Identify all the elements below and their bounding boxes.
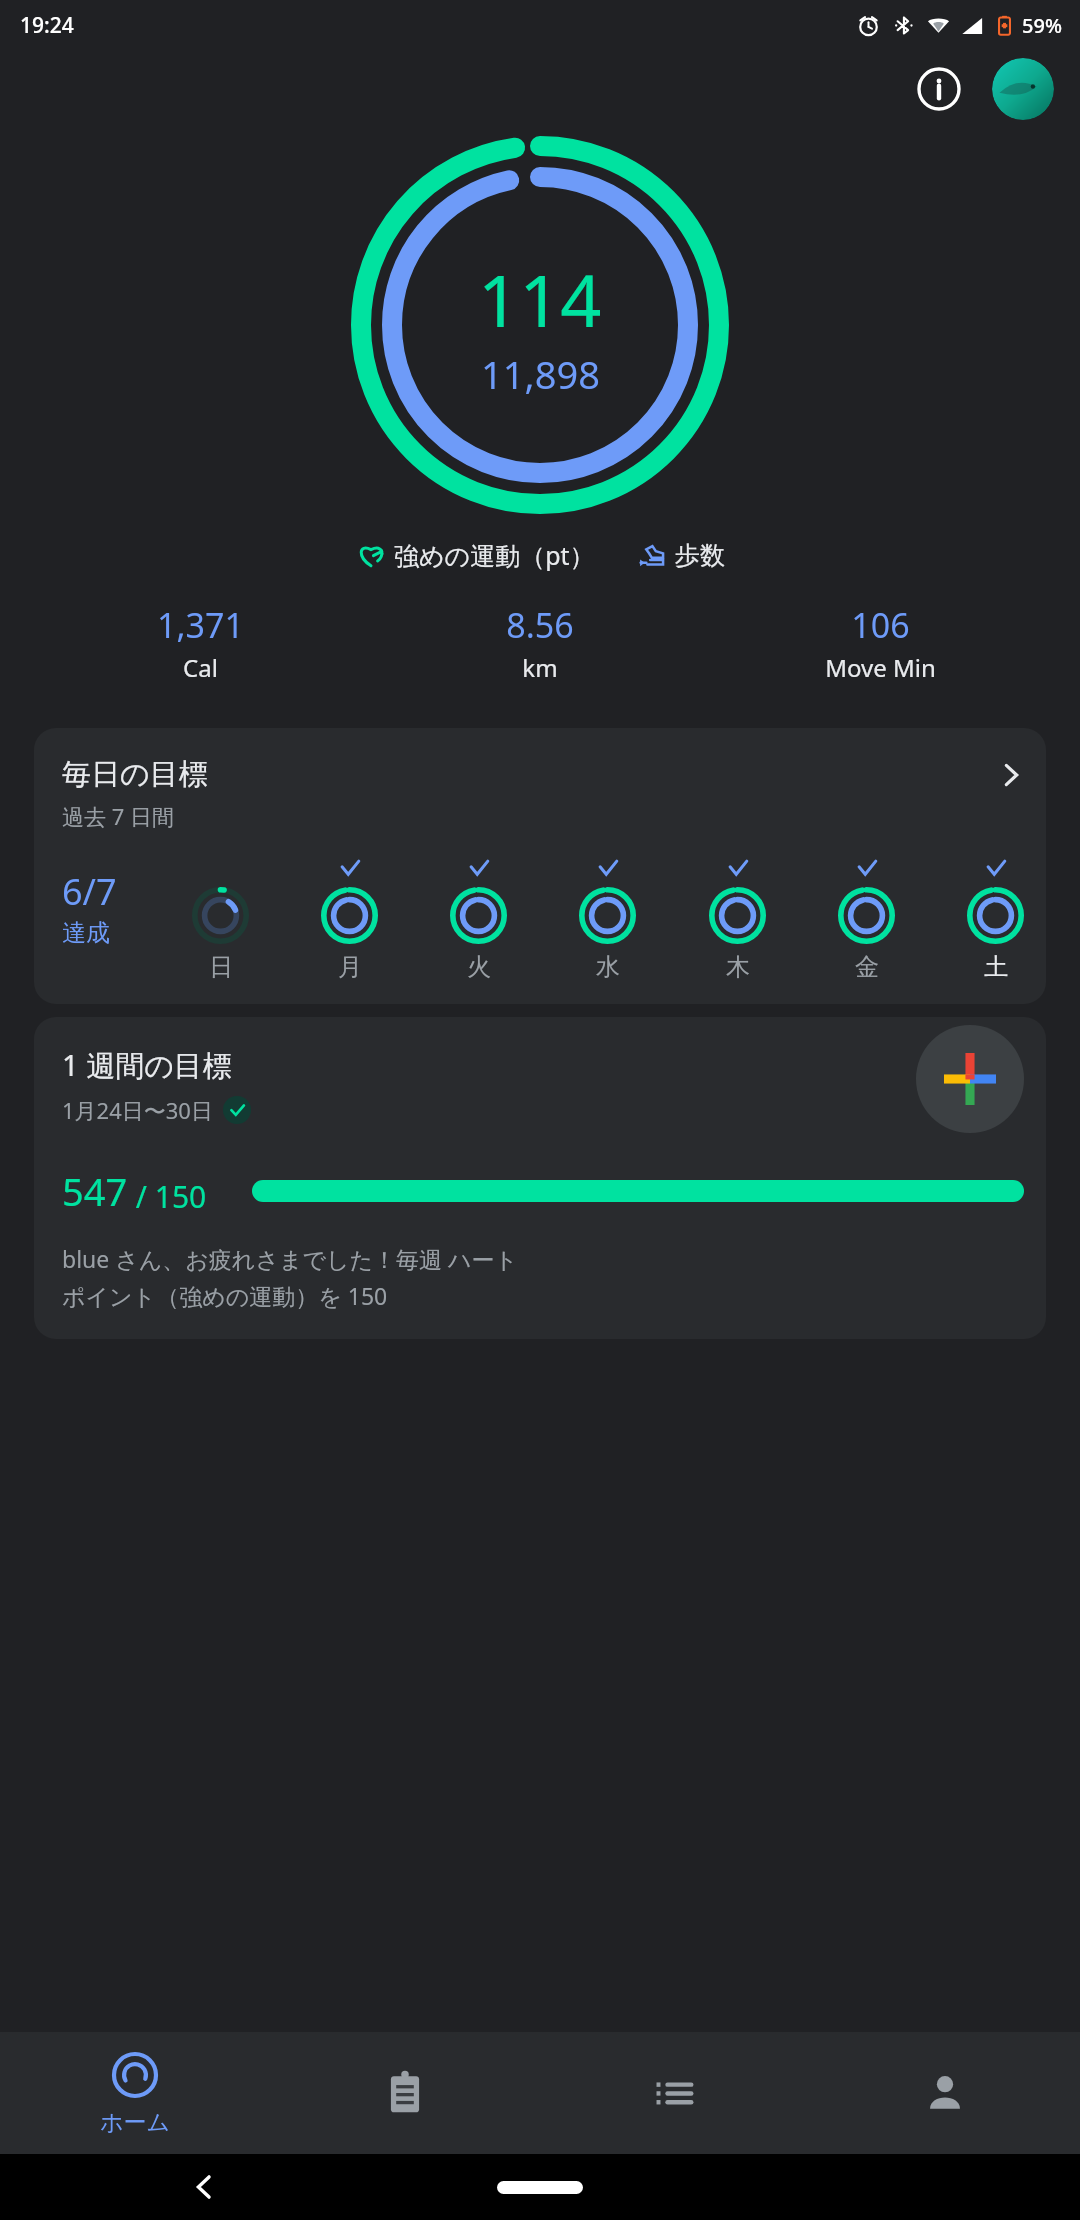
staticText: 8.56 <box>506 602 574 648</box>
staticText: 歩数 <box>675 540 725 571</box>
button[interactable]: Profile <box>992 58 1054 120</box>
staticText: / 150 <box>128 1176 207 1217</box>
staticText: 毎日の目標 <box>62 756 998 793</box>
other: Home <box>497 2181 583 2194</box>
staticText: 強めの運動（pt） <box>394 538 595 572</box>
button[interactable]: 毎日の目標 <box>34 728 1046 1004</box>
button[interactable]: 1 週間の目標 <box>34 1017 1046 1339</box>
staticText: 月 <box>338 952 362 982</box>
staticText: Move Min <box>825 651 936 684</box>
other: Back <box>190 2173 218 2201</box>
staticText: km <box>522 651 558 684</box>
staticText: 106 <box>851 602 910 648</box>
staticText: 1,371 <box>157 602 244 648</box>
staticText: ポイント（強めの運動）を 150 <box>62 1280 388 1311</box>
button[interactable]: 8.56 <box>370 602 710 684</box>
button[interactable]: Home <box>0 2032 270 2154</box>
staticText: 火 <box>467 952 491 982</box>
staticText: 土 <box>984 952 1008 982</box>
button[interactable]: Add activity <box>916 1025 1024 1133</box>
staticText: 金 <box>855 952 879 982</box>
button[interactable]: Tab <box>270 2032 540 2154</box>
button[interactable]: Tab <box>810 2032 1080 2154</box>
staticText: ホーム <box>100 2108 171 2137</box>
staticText: 547 <box>62 1165 128 1217</box>
staticText: 1 週間の目標 <box>62 1045 232 1085</box>
button[interactable]: Tab <box>540 2032 810 2154</box>
staticText: 114 <box>478 250 602 348</box>
staticText: 6/7 <box>62 867 117 916</box>
staticText: 1月24日〜30日 <box>62 1095 213 1125</box>
staticText: Cal <box>183 651 218 684</box>
staticText: 達成 <box>62 918 110 948</box>
button[interactable]: Info <box>912 62 966 116</box>
staticText: 木 <box>726 952 750 982</box>
staticText: 19:24 <box>20 11 74 40</box>
staticText: blue さん、お疲れさまでした！毎週 ハート <box>62 1243 519 1274</box>
staticText: 日 <box>209 952 233 982</box>
staticText: 水 <box>596 952 620 982</box>
button[interactable]: 106 <box>710 602 1050 684</box>
button[interactable]: 1,371 <box>30 602 370 684</box>
staticText: 過去 7 日間 <box>62 801 175 831</box>
staticText: 59% <box>1022 12 1062 39</box>
staticText: 11,898 <box>481 348 600 400</box>
